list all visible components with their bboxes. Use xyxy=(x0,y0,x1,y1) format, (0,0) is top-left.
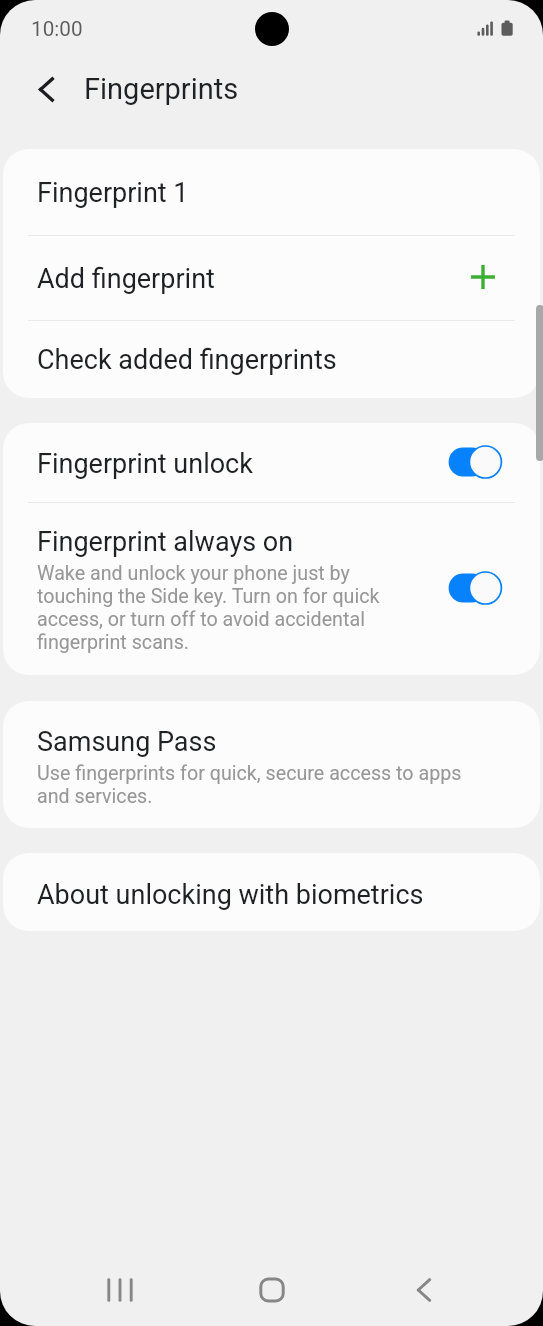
staticText: About unlocking with biometrics xyxy=(37,879,424,911)
staticText: 10:00 xyxy=(31,17,83,41)
button[interactable]: Fingerprint unlock xyxy=(3,423,540,502)
staticText: Fingerprint unlock xyxy=(37,448,253,480)
button[interactable]: Toggle Fingerprint always on xyxy=(448,570,502,606)
button[interactable]: About unlocking with biometrics xyxy=(3,853,540,931)
button[interactable]: Fingerprint always on xyxy=(3,502,540,675)
button[interactable]: Back xyxy=(372,1238,476,1326)
staticText: Fingerprint 1 xyxy=(37,177,189,209)
staticText: Samsung Pass xyxy=(37,726,217,758)
button[interactable]: Samsung Pass xyxy=(3,701,540,828)
button[interactable]: Toggle Fingerprint unlock xyxy=(448,444,502,480)
button[interactable]: Fingerprint 1 xyxy=(3,149,540,235)
staticText: Check added fingerprints xyxy=(37,344,337,376)
button[interactable]: Add fingerprint xyxy=(463,257,503,297)
staticText: Add fingerprint xyxy=(37,263,215,295)
button[interactable]: Home xyxy=(220,1238,324,1326)
button[interactable]: Add fingerprint xyxy=(3,235,540,320)
staticText: Wake and unlock your phone just by touch… xyxy=(37,562,389,654)
staticText: Fingerprints xyxy=(84,72,239,106)
button[interactable]: Recents xyxy=(68,1238,172,1326)
staticText: Use fingerprints for quick, secure acces… xyxy=(37,762,478,808)
button[interactable]: Back xyxy=(22,65,71,114)
staticText: Fingerprint always on xyxy=(37,526,294,558)
button[interactable]: Check added fingerprints xyxy=(3,320,540,398)
